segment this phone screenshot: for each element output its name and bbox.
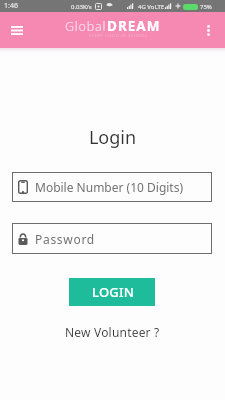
button[interactable]: Mobile Number (10 Digits)	[12, 172, 212, 202]
button[interactable]: More options	[196, 18, 220, 42]
staticText: DREAM	[107, 17, 161, 35]
button[interactable]: New Volunteer ?	[57, 321, 168, 343]
staticText: Password	[35, 231, 95, 247]
staticText: Global	[65, 18, 107, 35]
staticText: LOGIN	[92, 283, 135, 301]
staticText: Mobile Number (10 Digits)	[35, 179, 184, 195]
button[interactable]: Password	[12, 223, 212, 254]
button[interactable]: LOGIN	[69, 278, 155, 306]
staticText: 4G VoLTE	[138, 3, 165, 11]
button[interactable]: Open navigation menu	[4, 17, 30, 43]
staticText: 1:46	[4, 1, 18, 11]
staticText: New Volunteer ?	[65, 324, 160, 340]
staticText: 75%	[200, 3, 212, 11]
staticText: Login	[0, 125, 225, 150]
staticText: 0.03K/s	[71, 3, 92, 11]
staticText: EVERY CHILD IN SCHOOL	[89, 33, 148, 38]
